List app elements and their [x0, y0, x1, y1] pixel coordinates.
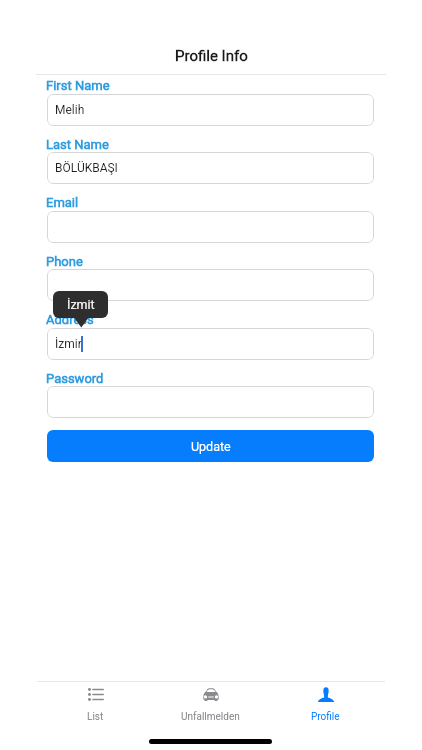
button[interactable] [47, 269, 374, 301]
button[interactable]: Melih [47, 94, 374, 126]
staticText: BÖLÜKBAŞI [55, 161, 118, 175]
staticText: İzmir [55, 337, 82, 351]
staticText: Address [46, 312, 94, 327]
button[interactable]: List [38, 687, 153, 723]
staticText: List [87, 711, 104, 723]
staticText: Unfallmelden [181, 711, 240, 723]
button[interactable]: BÖLÜKBAŞI [47, 152, 374, 184]
button[interactable]: Update [47, 430, 374, 462]
staticText: Update [191, 439, 231, 454]
staticText: Melih [55, 103, 85, 117]
button[interactable]: Profile [268, 687, 383, 723]
staticText: Profile [311, 711, 340, 723]
button[interactable]: Report accident [153, 687, 268, 723]
staticText: First Name [46, 78, 110, 93]
button[interactable] [47, 386, 374, 418]
staticText: Password [46, 371, 104, 386]
staticText: Phone [46, 254, 83, 269]
staticText: Email [46, 195, 79, 210]
staticText: Profile Info [175, 47, 248, 65]
button[interactable]: İzmit [53, 291, 108, 318]
staticText: İzmit [67, 297, 95, 312]
staticText: Last Name [46, 137, 109, 152]
button[interactable]: İzmir [47, 328, 374, 360]
button[interactable] [47, 211, 374, 243]
